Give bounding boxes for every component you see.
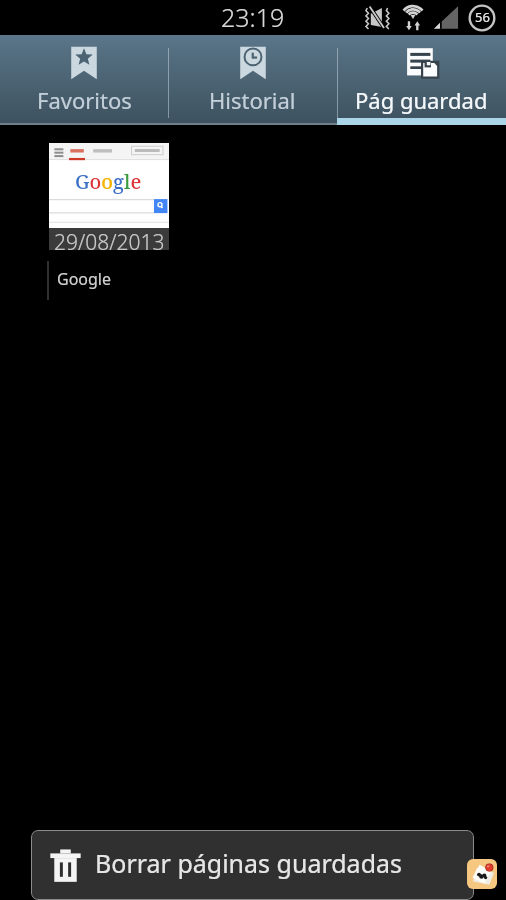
button[interactable]: Google — [49, 143, 169, 250]
button[interactable]: Notes — [467, 859, 497, 889]
staticText: Google — [57, 268, 112, 290]
staticText: Pág guardad — [355, 85, 488, 115]
button[interactable]: Borrar páginas guardadas — [31, 830, 474, 900]
staticText: Borrar páginas guardadas — [95, 846, 403, 880]
staticText: Favoritos — [37, 85, 132, 115]
staticText: 29/08/2013 — [54, 228, 165, 250]
staticText: Google — [75, 168, 142, 195]
staticText: 23:19 — [221, 0, 285, 34]
button[interactable]: Pág guardad — [337, 35, 506, 125]
staticText: Historial — [209, 85, 296, 115]
button[interactable]: Favoritos — [0, 35, 168, 125]
button[interactable]: Google — [47, 261, 307, 300]
staticText: 56 — [475, 8, 490, 26]
button[interactable]: Historial — [168, 35, 337, 125]
